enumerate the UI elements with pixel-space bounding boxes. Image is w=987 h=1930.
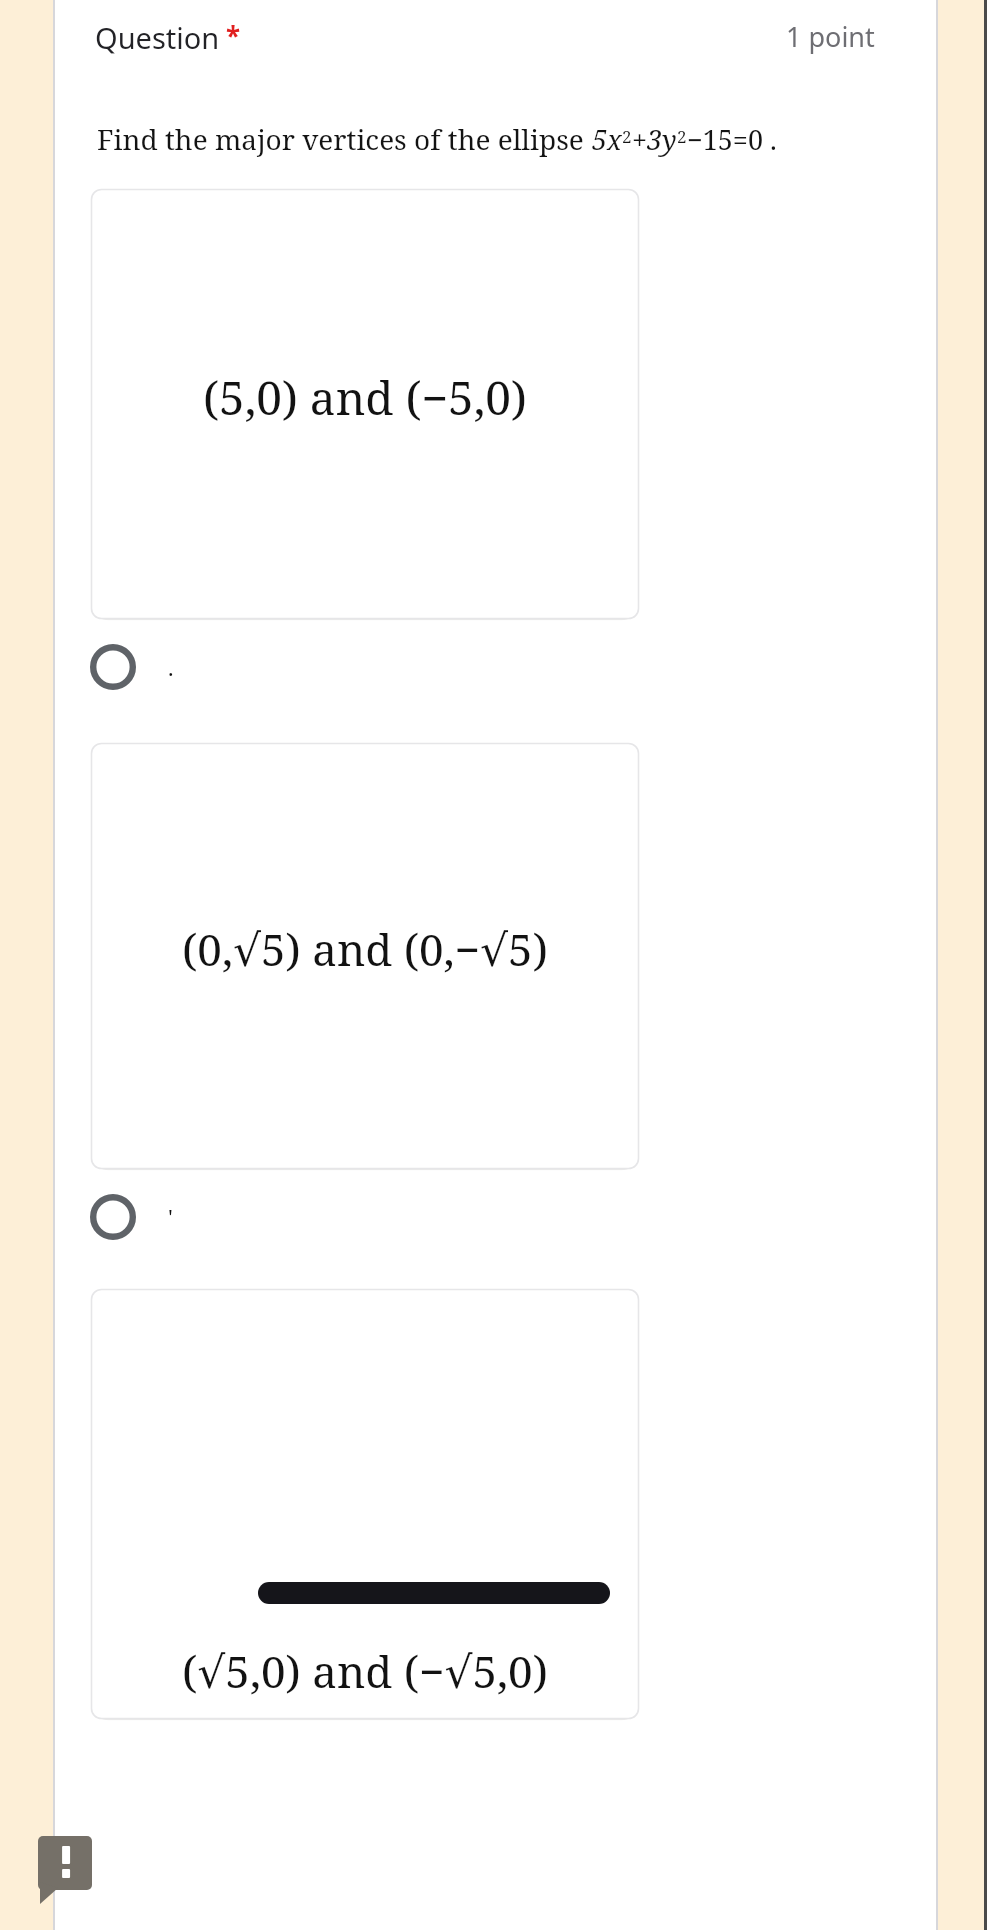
staticText: 5x — [592, 121, 622, 158]
staticText: . — [168, 652, 174, 682]
staticText: ' — [168, 1202, 173, 1232]
staticText: (√5,0) and (−√5,0) — [182, 1641, 548, 1701]
button[interactable]: Answer (5,0) and (-5,0) — [91, 189, 639, 619]
button[interactable]: Answer (sqrt5,0) and (-sqrt5,0) — [91, 1289, 639, 1719]
staticText: −15=0 . — [687, 121, 777, 158]
staticText: (5,0) and (−5,0) — [203, 366, 527, 429]
staticText: +3y — [632, 121, 677, 158]
button[interactable]: Select answer 1 — [0, 619, 987, 715]
staticText: Question — [95, 18, 220, 57]
staticText: (0,√5) and (0,−√5) — [182, 919, 548, 979]
staticText: 1 point — [786, 18, 875, 55]
button[interactable]: Select answer 2 — [0, 1169, 987, 1265]
button[interactable]: Information — [38, 1836, 92, 1902]
staticText: * — [226, 18, 241, 53]
button[interactable]: Answer (0,sqrt5) and (0,-sqrt5) — [91, 743, 639, 1169]
staticText: 2 — [677, 125, 687, 148]
staticText: 2 — [622, 125, 632, 148]
staticText: Find the major vertices of the ellipse — [97, 120, 592, 158]
